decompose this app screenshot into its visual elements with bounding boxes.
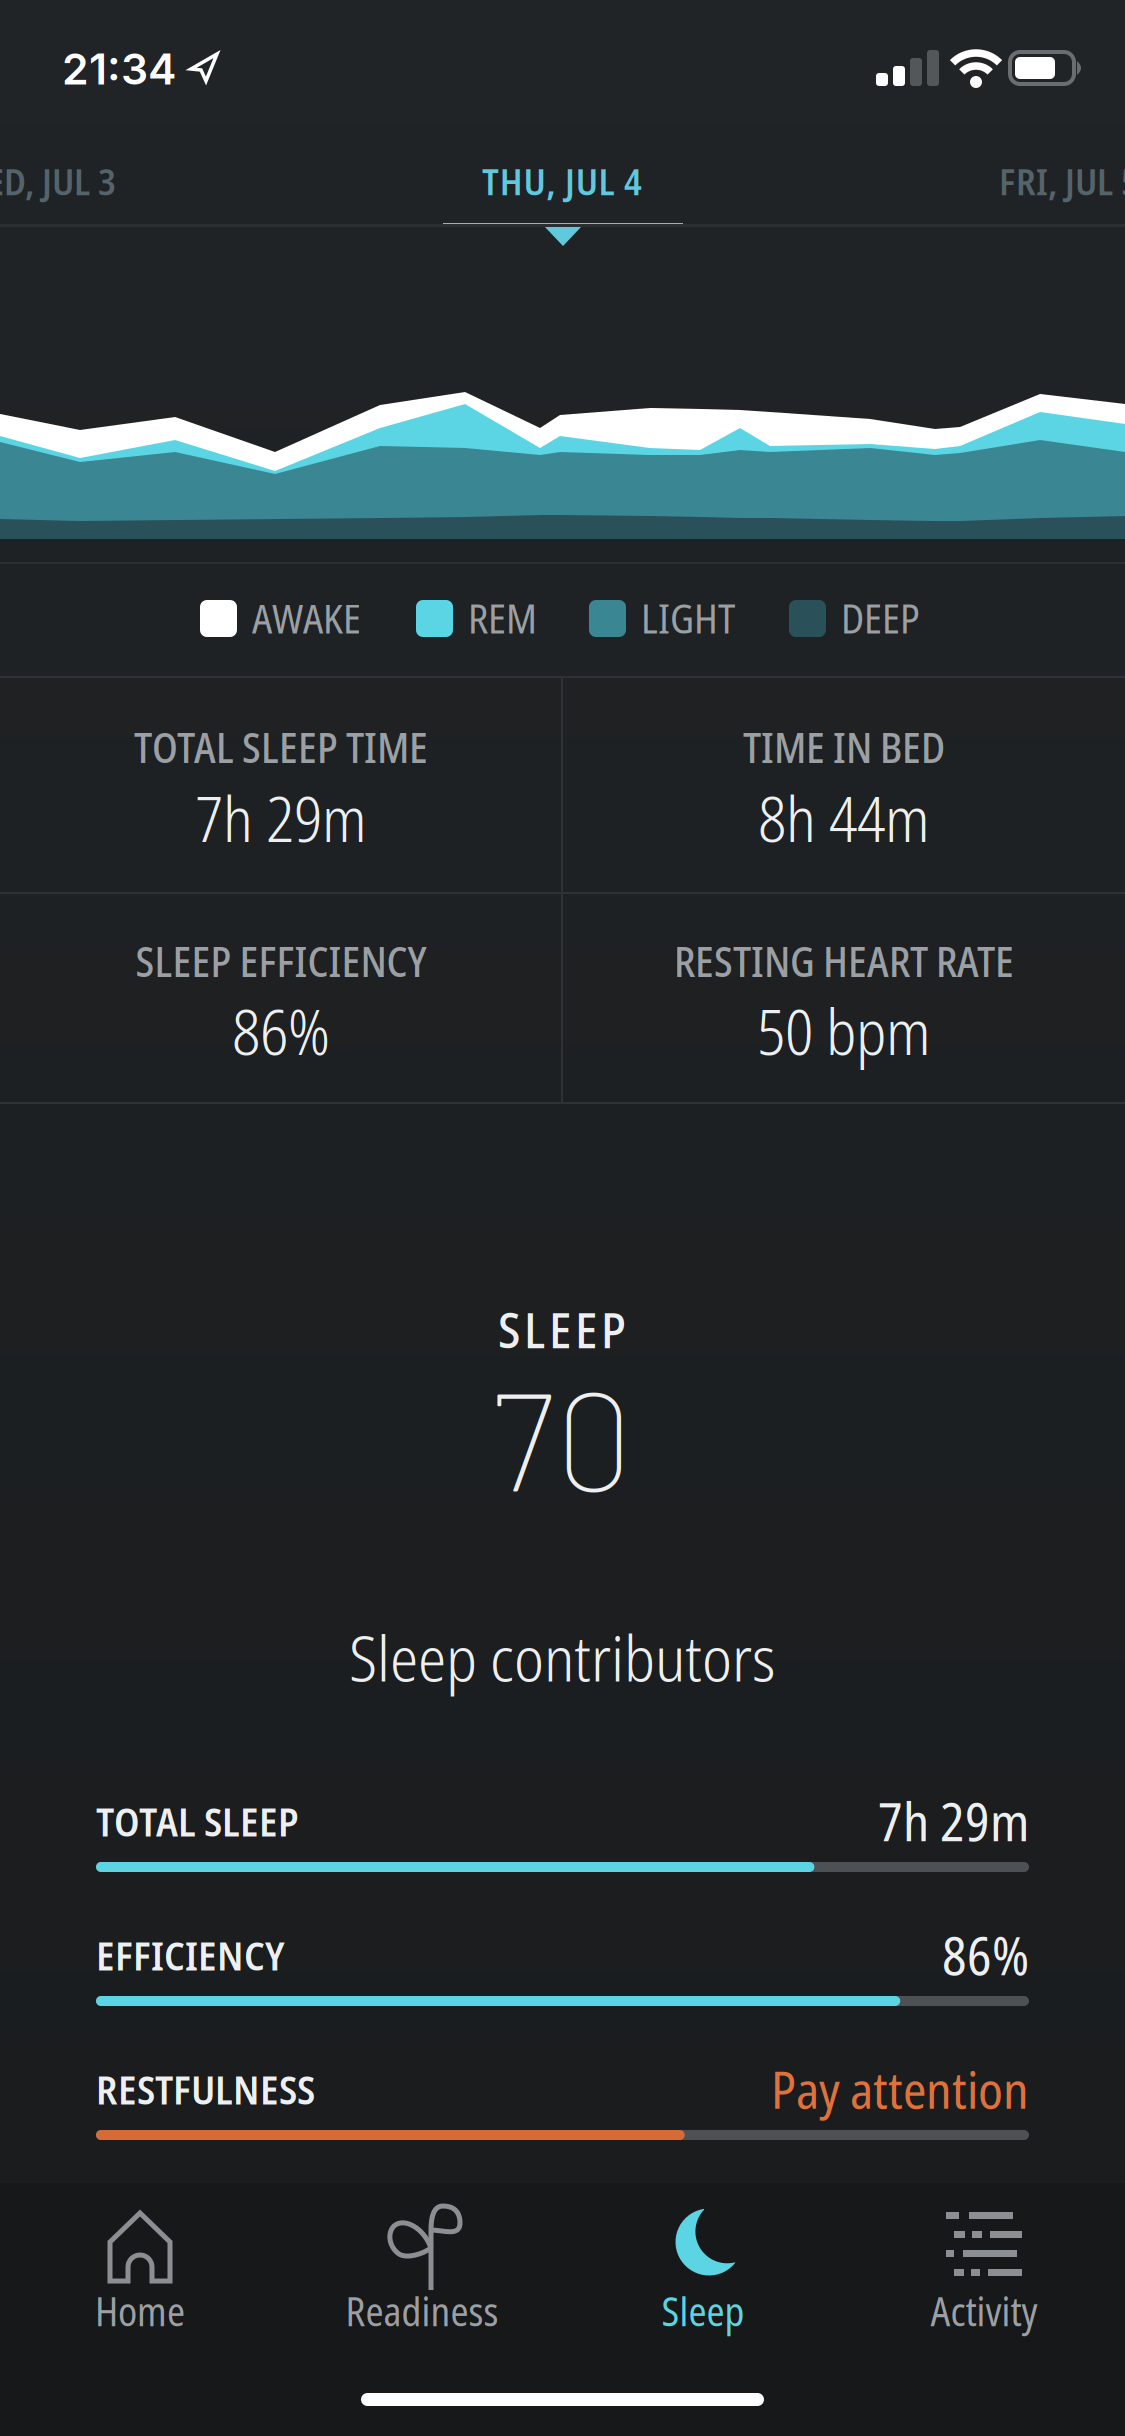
- staticText: 7h 29m: [195, 776, 367, 860]
- button[interactable]: Friday, July 5: [999, 133, 1125, 229]
- staticText: THU, JUL 4: [482, 156, 642, 206]
- staticText: DEEP: [841, 591, 920, 645]
- staticText: RESTFULNESS: [96, 2062, 315, 2116]
- staticText: Activity: [930, 2284, 1037, 2338]
- staticText: EFFICIENCY: [96, 1928, 285, 1982]
- staticText: REM: [468, 591, 537, 645]
- staticText: TOTAL SLEEP: [96, 1794, 299, 1848]
- staticText: TOTAL SLEEP TIME: [134, 719, 428, 775]
- staticText: TIME IN BED: [743, 719, 945, 775]
- staticText: 50 bpm: [757, 989, 931, 1073]
- staticText: RESTING HEART RATE: [674, 933, 1014, 989]
- button[interactable]: Sleep: [562, 2200, 843, 2360]
- staticText: SLEEP EFFICIENCY: [135, 933, 426, 989]
- staticText: 86%: [232, 989, 330, 1073]
- staticText: WED, JUL 3: [0, 156, 116, 206]
- staticText: FRI, JUL 5: [999, 156, 1125, 206]
- button[interactable]: Readiness: [281, 2200, 562, 2360]
- staticText: Sleep: [661, 2284, 744, 2338]
- staticText: SLEEP: [498, 1295, 626, 1363]
- staticText: Home: [95, 2284, 185, 2338]
- staticText: 7h 29m: [878, 1786, 1029, 1856]
- staticText: Pay attention: [771, 2054, 1029, 2123]
- staticText: 21:34: [62, 43, 176, 95]
- staticText: AWAKE: [252, 591, 361, 645]
- button[interactable]: Thursday, July 4: [442, 133, 682, 229]
- staticText: Readiness: [345, 2284, 498, 2338]
- staticText: LIGHT: [641, 591, 735, 645]
- staticText: 8h 44m: [758, 776, 930, 860]
- button[interactable]: Wednesday, July 3: [0, 133, 188, 229]
- staticText: 70: [491, 1353, 633, 1519]
- button[interactable]: Activity: [843, 2200, 1124, 2360]
- staticText: Sleep contributors: [349, 1614, 775, 1700]
- button[interactable]: Home: [0, 2200, 280, 2360]
- staticText: 86%: [942, 1920, 1029, 1990]
